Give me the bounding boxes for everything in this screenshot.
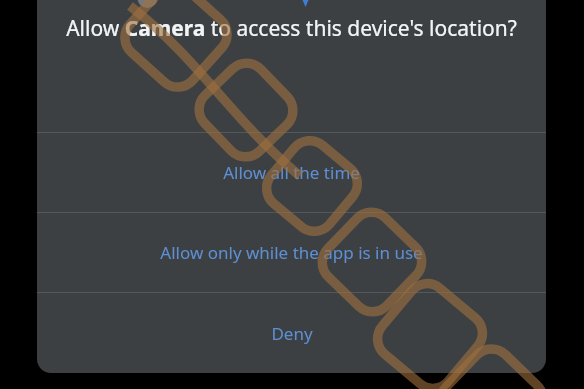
button[interactable]: Allow only while the app is in use (37, 213, 546, 292)
staticText: Allow only while the app is in use (160, 241, 423, 264)
staticText: Deny (271, 322, 313, 345)
staticText: Allow all the time (223, 161, 360, 184)
button[interactable]: Deny (37, 293, 546, 373)
staticText: Allow Camera to access this device's loc… (66, 14, 517, 43)
other: Watermark (0, 0, 584, 389)
button[interactable]: Allow all the time (37, 133, 546, 212)
